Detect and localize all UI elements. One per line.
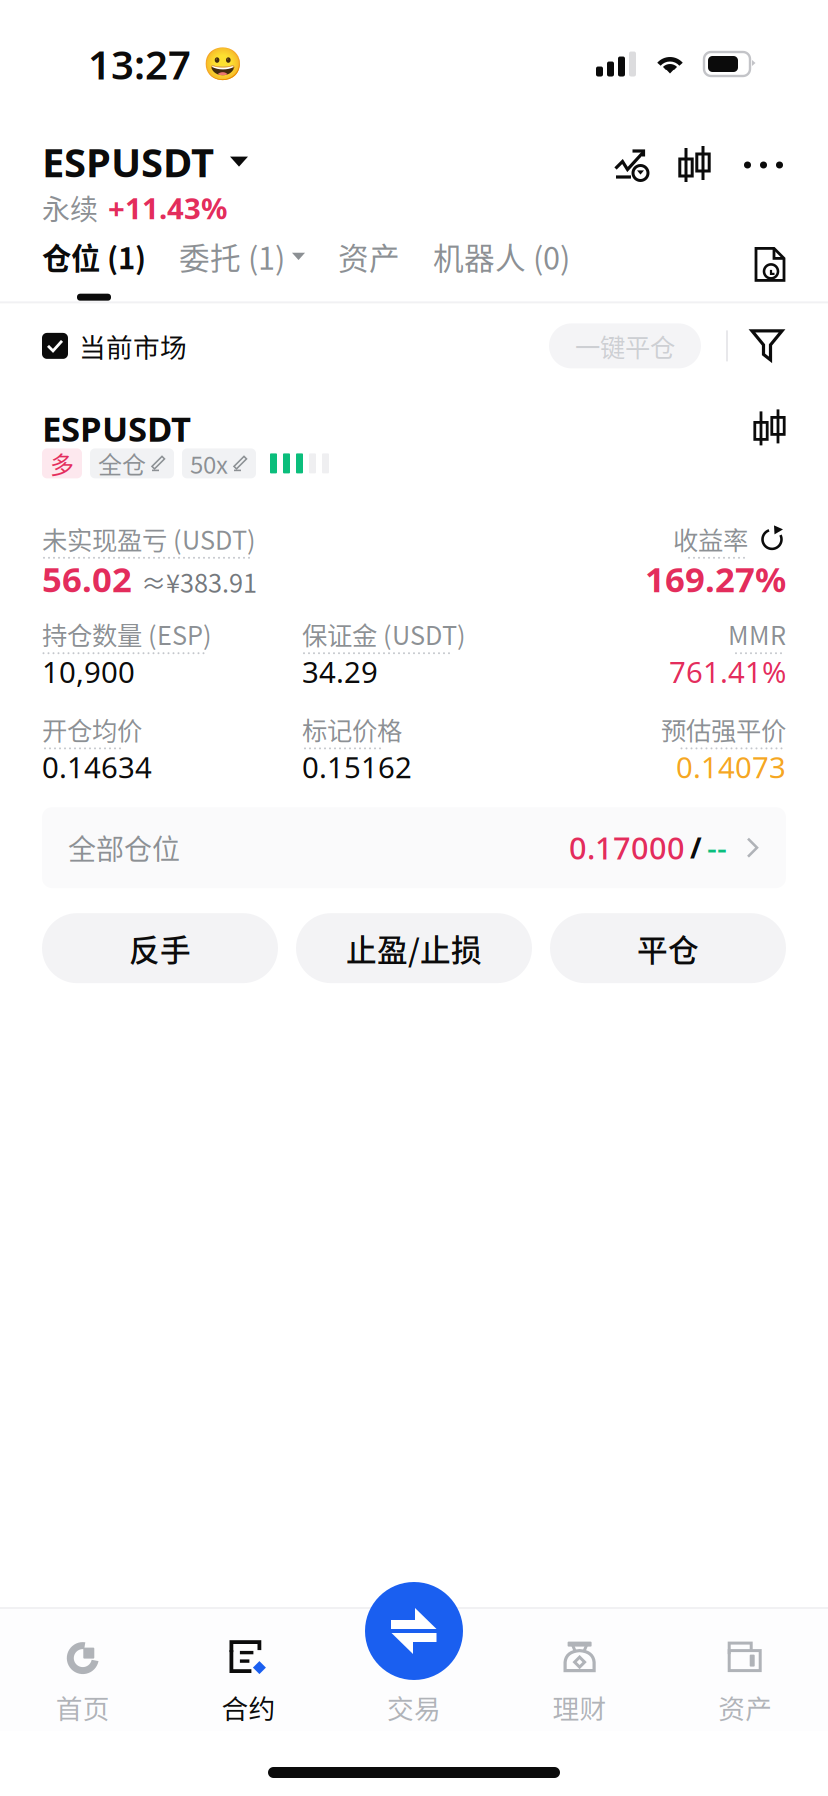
staticText: 持仓数量 (ESP) <box>42 621 212 647</box>
staticText: 合约 <box>221 1693 275 1721</box>
staticText: 平仓 <box>637 932 699 964</box>
staticText: 永续 <box>42 193 98 222</box>
button[interactable]: 一键平仓 <box>549 323 701 368</box>
button[interactable]: 当前市场 <box>42 332 187 360</box>
button[interactable]: 首页 <box>0 1611 166 1729</box>
staticText: 保证金 (USDT) <box>302 621 466 647</box>
staticText: 多 <box>50 451 74 476</box>
staticText: 收益率 <box>673 525 748 552</box>
button[interactable]: 仓位 (1) <box>42 241 146 301</box>
button[interactable]: Order history <box>754 246 786 301</box>
staticText: 首页 <box>56 1693 110 1721</box>
button[interactable]: 平仓 <box>550 913 786 983</box>
button[interactable]: ESPUSDT <box>42 142 248 222</box>
staticText: 10,900 <box>42 657 135 686</box>
button[interactable]: 资产 <box>662 1611 828 1729</box>
staticText: 当前市场 <box>79 332 187 360</box>
staticText: 761.41% <box>669 657 786 686</box>
button[interactable]: 交易 <box>331 1611 497 1729</box>
staticText: 未实现盈亏 (USDT) <box>42 525 256 552</box>
staticText: 资产 <box>718 1693 772 1721</box>
staticText: 标记价格 <box>302 716 402 742</box>
staticText: 预估强平价 <box>661 716 786 742</box>
staticText: 资产 <box>338 240 400 272</box>
button[interactable]: 全部仓位 <box>42 807 786 888</box>
staticText: 0.14634 <box>42 752 152 781</box>
staticText: ESPUSDT <box>42 142 214 181</box>
staticText: MMR <box>728 621 786 647</box>
staticText: 56.02 <box>42 562 132 596</box>
button[interactable]: 理财 <box>497 1611 662 1729</box>
button[interactable]: 反手 <box>42 913 278 983</box>
button[interactable]: Candlestick chart <box>678 146 711 184</box>
staticText: / <box>690 834 702 861</box>
button[interactable]: 机器人 (0) <box>433 240 570 301</box>
staticText: 0.17000 <box>569 833 685 863</box>
staticText: 50x <box>190 451 228 476</box>
button[interactable]: 资产 <box>338 240 400 301</box>
button[interactable]: More options <box>741 147 786 183</box>
staticText: 理财 <box>553 1693 607 1721</box>
button[interactable]: 50x <box>182 448 256 478</box>
staticText: ≈¥383.91 <box>141 568 257 595</box>
button[interactable]: 全仓 <box>90 448 174 478</box>
staticText: 13:27 <box>88 44 191 84</box>
staticText: ESPUSDT <box>42 411 191 445</box>
staticText: 169.27% <box>645 562 786 596</box>
staticText: 0.14073 <box>676 752 786 781</box>
button[interactable]: 多 <box>42 448 82 478</box>
button[interactable]: Trade <box>365 1582 463 1680</box>
staticText: 开仓均价 <box>42 716 142 742</box>
staticText: 止盈/止损 <box>346 932 482 964</box>
button[interactable]: 止盈/止损 <box>296 913 532 983</box>
button[interactable]: Depth chart <box>614 147 648 183</box>
staticText: 一键平仓 <box>575 333 675 359</box>
staticText: +11.43% <box>108 193 227 222</box>
button[interactable]: 委托 (1) <box>179 240 305 301</box>
staticText: 0.15162 <box>302 752 412 781</box>
staticText: 😀 <box>203 50 243 77</box>
staticText: 34.29 <box>302 657 378 686</box>
staticText: 全仓 <box>98 451 146 476</box>
staticText: 反手 <box>129 932 191 964</box>
staticText: 机器人 (0) <box>433 240 570 272</box>
staticText: 委托 (1) <box>179 240 285 272</box>
staticText: -- <box>707 833 727 863</box>
staticText: 交易 <box>387 1693 441 1721</box>
staticText: 全部仓位 <box>68 833 180 862</box>
staticText: 仓位 (1) <box>42 241 146 272</box>
button[interactable]: Open chart <box>753 409 786 447</box>
button[interactable]: 合约 <box>166 1611 331 1729</box>
button[interactable]: Filter <box>750 327 786 365</box>
